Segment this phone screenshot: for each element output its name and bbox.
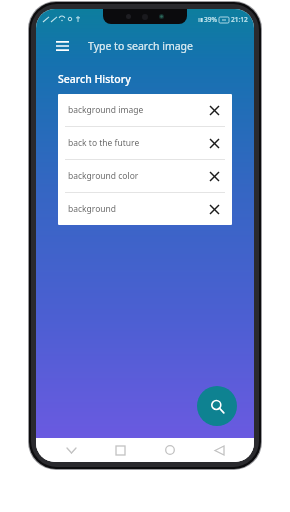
staticText: Search History [58,72,131,86]
staticText: 39% [204,15,217,24]
button[interactable]: background [58,193,232,225]
staticText: background color [68,170,139,182]
button[interactable]: Remove background [204,199,224,219]
button[interactable]: Remove back to the future [204,133,224,153]
button[interactable]: Hide [57,438,85,462]
staticText: back to the future [68,137,140,149]
button[interactable]: Recent apps [106,438,134,462]
staticText: background image [68,104,144,116]
button[interactable]: back to the future [58,127,232,159]
staticText: 21:12 [231,15,248,24]
button[interactable]: Type to search image [88,31,254,61]
button[interactable]: Back [205,438,233,462]
staticText: background [68,203,117,215]
button[interactable]: Home [156,438,184,462]
button[interactable]: background color [58,160,232,192]
button[interactable]: Remove background color [204,166,224,186]
button[interactable]: background image [58,94,232,126]
button[interactable]: Remove background image [204,100,224,120]
button[interactable]: Search [197,386,237,426]
staticText: Type to search image [88,39,193,53]
button[interactable]: Open navigation menu [50,34,74,58]
